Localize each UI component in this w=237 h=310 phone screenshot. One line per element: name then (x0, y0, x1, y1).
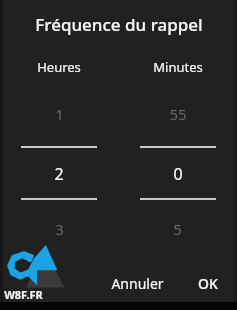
staticText: 5 (173, 219, 182, 239)
button[interactable]: 1 (0, 100, 118, 128)
button[interactable]: Annuler (96, 268, 179, 298)
other: Heures picker (0, 100, 118, 241)
staticText: OK (198, 274, 218, 293)
staticText: 0 (173, 163, 183, 185)
button[interactable]: 55 (118, 100, 237, 128)
button[interactable]: 2 (0, 163, 118, 185)
staticText: 3 (55, 219, 64, 239)
button[interactable]: 3 (0, 217, 118, 241)
button[interactable]: 5 (118, 217, 237, 241)
staticText: Annuler (111, 274, 164, 293)
button[interactable]: 0 (118, 163, 237, 185)
staticText: W8F.FR (4, 287, 43, 302)
staticText: Heures (37, 58, 81, 76)
staticText: 2 (54, 163, 64, 185)
other: Minutes picker (118, 100, 237, 241)
staticText: Fréquence du rappel (35, 13, 203, 36)
button[interactable]: OK (179, 268, 237, 298)
staticText: 1 (55, 104, 64, 124)
other: W8F.FR watermark (3, 242, 71, 302)
staticText: 55 (169, 104, 187, 124)
staticText: Minutes (153, 58, 203, 76)
